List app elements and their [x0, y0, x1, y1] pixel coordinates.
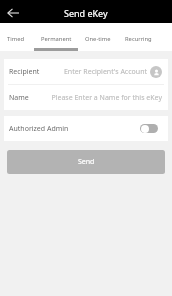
- button[interactable]: Name: [4, 85, 168, 110]
- staticText: Recipient: [9, 67, 40, 77]
- button[interactable]: One-time: [77, 23, 118, 51]
- button[interactable]: Back: [1, 2, 25, 23]
- button[interactable]: Recipient: [4, 59, 168, 84]
- staticText: Send: [78, 157, 95, 167]
- staticText: Recurring: [125, 35, 152, 43]
- staticText: Authorized Admin: [9, 124, 69, 134]
- staticText: Please Enter a Name for this eKey: [29, 93, 162, 103]
- staticText: Send eKey: [64, 7, 108, 19]
- staticText: Permanent: [41, 35, 72, 43]
- button[interactable]: Choose contact: [150, 66, 162, 78]
- staticText: Enter Recipient's Account: [40, 67, 147, 77]
- button[interactable]: Send: [7, 150, 165, 174]
- button[interactable]: Authorized Admin: [4, 116, 168, 141]
- button[interactable]: Authorized Admin toggle: [140, 124, 158, 133]
- button[interactable]: Permanent: [36, 23, 77, 51]
- button[interactable]: Timed: [0, 23, 36, 51]
- staticText: One-time: [85, 35, 111, 43]
- staticText: Timed: [7, 35, 24, 43]
- button[interactable]: Recurring: [118, 23, 159, 51]
- staticText: Name: [9, 93, 29, 103]
